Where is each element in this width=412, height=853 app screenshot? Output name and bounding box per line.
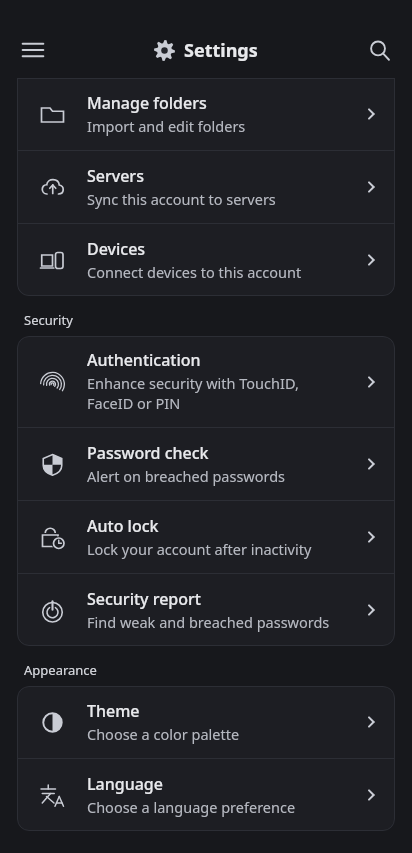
button[interactable]: Menu [14,31,52,69]
staticText: Servers [87,165,144,187]
staticText: Security report [87,588,201,610]
staticText: Auto lock [87,515,159,537]
button[interactable]: Manage folders [17,78,395,150]
staticText: Find weak and breached passwords [87,612,330,632]
staticText: Alert on breached passwords [87,466,286,486]
staticText: Import and edit folders [87,116,246,136]
staticText: Choose a language preference [87,797,296,817]
button[interactable]: Password check [17,428,395,500]
staticText: Settings [184,38,258,63]
button[interactable]: Theme [17,686,395,758]
staticText: Manage folders [87,92,207,114]
button[interactable]: Auto lock [17,501,395,573]
staticText: Sync this account to servers [87,189,276,209]
staticText: Password check [87,442,209,464]
button[interactable]: Authentication [17,336,395,427]
staticText: Enhance security with TouchID, FaceID or… [87,373,299,414]
staticText: Choose a color palette [87,724,240,744]
button[interactable]: Devices [17,224,395,296]
staticText: Language [87,773,163,795]
staticText: Authentication [87,349,201,371]
button[interactable]: Search [360,31,398,69]
button[interactable]: Servers [17,151,395,223]
staticText: Connect devices to this account [87,262,302,282]
staticText: Security [24,311,412,329]
staticText: Devices [87,238,146,260]
staticText: Appearance [24,661,412,679]
staticText: Theme [87,700,140,722]
staticText: Lock your account after inactivity [87,539,312,559]
button[interactable]: Language [17,759,395,831]
button[interactable]: Security report [17,574,395,646]
